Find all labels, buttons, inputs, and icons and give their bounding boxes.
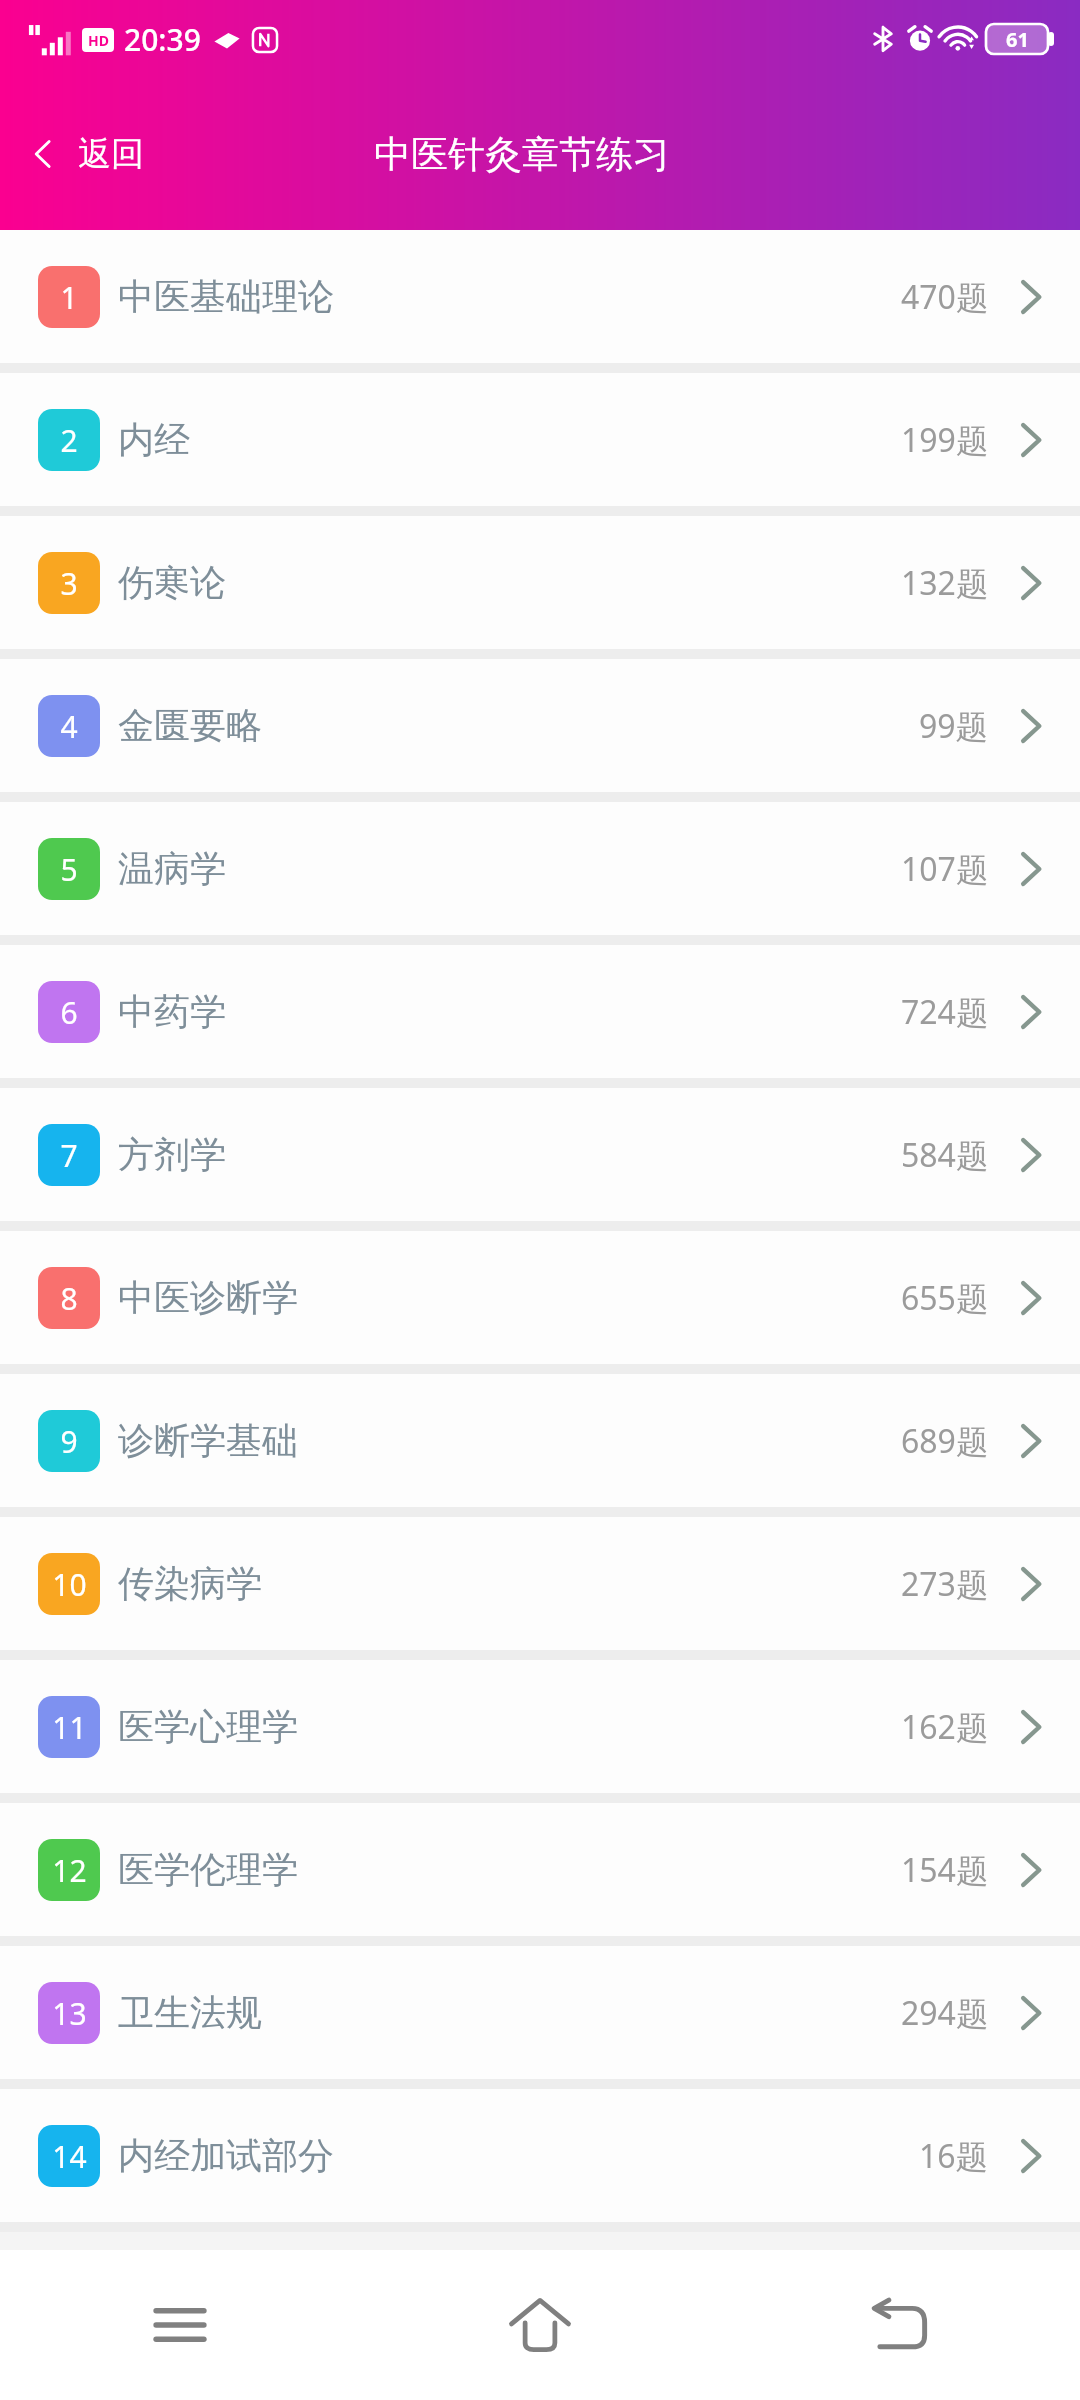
staticText: 内经加试部分 [118,2133,334,2178]
staticText: 107题 [901,847,988,891]
staticText: 返回 [78,133,144,175]
button[interactable]: 6 [0,945,1080,1078]
button[interactable]: 9 [0,1374,1080,1507]
staticText: 8 [60,1278,78,1319]
staticText: 3 [60,563,78,604]
staticText: 655题 [901,1276,988,1320]
staticText: 传染病学 [118,1561,262,1606]
staticText: 中药学 [118,989,226,1034]
button[interactable]: 4 [0,659,1080,792]
staticText: 诊断学基础 [118,1418,298,1463]
staticText: 154题 [901,1848,988,1892]
staticText: 温病学 [118,846,226,891]
staticText: 294题 [901,1991,988,2035]
staticText: 6 [60,992,78,1033]
button[interactable]: Back [720,2250,1080,2400]
button[interactable]: 10 [0,1517,1080,1650]
button[interactable]: 14 [0,2089,1080,2222]
staticText: 20:39 [124,19,201,60]
staticText: 医学心理学 [118,1704,298,1749]
staticText: 724题 [901,990,988,1034]
button[interactable]: 返回 [0,78,164,230]
staticText: 162题 [901,1705,988,1749]
staticText: 10 [52,1564,87,1605]
staticText: 金匮要略 [118,703,262,748]
staticText: 12 [52,1850,87,1891]
staticText: 61 [1006,26,1029,53]
button[interactable]: 13 [0,1946,1080,2079]
button[interactable]: 2 [0,373,1080,506]
staticText: 199题 [901,418,988,462]
staticText: 470题 [901,275,988,319]
button[interactable]: 3 [0,516,1080,649]
staticText: 132题 [901,561,988,605]
staticText: 2 [60,420,78,461]
staticText: 584题 [901,1133,988,1177]
staticText: 医学伦理学 [118,1847,298,1892]
staticText: 16题 [919,2134,988,2178]
button[interactable]: 1 [0,230,1080,363]
staticText: 689题 [901,1419,988,1463]
button[interactable]: 12 [0,1803,1080,1936]
staticText: 9 [60,1421,78,1462]
staticText: 7 [60,1135,78,1176]
staticText: 273题 [901,1562,988,1606]
staticText: 中医诊断学 [118,1275,298,1320]
staticText: 99题 [919,704,988,748]
staticText: 13 [52,1993,87,2034]
staticText: 内经 [118,417,190,462]
staticText: 5 [60,849,78,890]
staticText: 卫生法规 [118,1990,262,2035]
button[interactable]: 7 [0,1088,1080,1221]
button[interactable]: 5 [0,802,1080,935]
staticText: 1 [60,277,78,318]
staticText: 中医基础理论 [118,274,334,319]
staticText: 11 [52,1707,87,1748]
button[interactable]: Home [360,2250,720,2400]
button[interactable]: 8 [0,1231,1080,1364]
staticText: 方剂学 [118,1132,226,1177]
staticText: 4 [60,706,78,747]
staticText: HD [88,31,109,50]
staticText: 14 [52,2136,87,2177]
button[interactable]: 11 [0,1660,1080,1793]
button[interactable]: Recent apps [0,2250,360,2400]
staticText: 中医针灸章节练习 [374,131,670,178]
staticText: 伤寒论 [118,560,226,605]
